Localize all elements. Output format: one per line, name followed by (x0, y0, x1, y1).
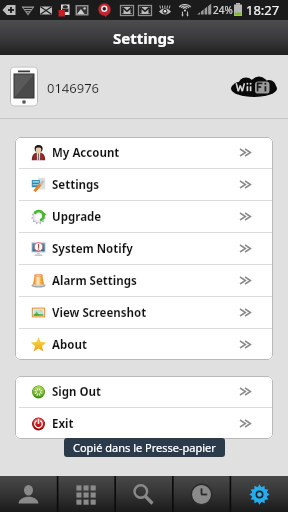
button[interactable]: Alarm Settings (15, 265, 273, 296)
button[interactable]: Sign Out (15, 376, 273, 407)
staticText: Upgrade (52, 209, 102, 225)
staticText: 0146976 (47, 79, 100, 97)
staticText: Exit (52, 416, 74, 432)
staticText: Copié dans le Presse-papier (73, 440, 216, 455)
button[interactable]: Apps (57, 476, 114, 512)
staticText: Alarm Settings (52, 273, 137, 289)
staticText: Sign Out (52, 384, 102, 400)
button[interactable]: Exit (15, 408, 273, 439)
button[interactable]: My Account (15, 137, 273, 168)
button[interactable]: Contacts (0, 476, 57, 512)
button[interactable]: Search (114, 476, 172, 512)
staticText: View Screenshot (52, 305, 147, 321)
button[interactable]: About (15, 329, 273, 360)
button[interactable]: Settings (230, 476, 288, 512)
staticText: My Account (52, 145, 120, 161)
button[interactable]: Recent (172, 476, 230, 512)
button[interactable]: View Screenshot (15, 297, 273, 328)
staticText: 18:27 (246, 1, 280, 19)
staticText: System Notify (52, 241, 133, 257)
staticText: Settings (113, 28, 175, 48)
staticText: About (52, 337, 87, 353)
button[interactable]: System Notify (15, 233, 273, 264)
button[interactable]: Settings (15, 169, 273, 200)
staticText: Settings (52, 177, 100, 193)
staticText: 24% (213, 3, 233, 17)
button[interactable]: Upgrade (15, 201, 273, 232)
